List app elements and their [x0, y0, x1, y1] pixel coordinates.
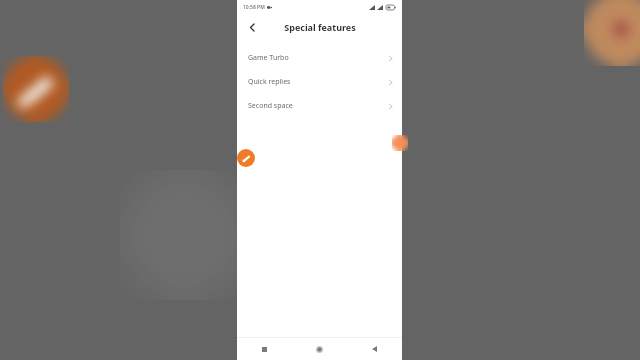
button[interactable]: Recents [237, 338, 292, 360]
button[interactable]: Second space [237, 94, 402, 118]
button[interactable]: Edit [237, 149, 255, 167]
staticText: Second space [248, 101, 293, 111]
staticText: 10:58 PM [243, 4, 265, 11]
button[interactable]: Back [347, 338, 402, 360]
staticText: Quick replies [248, 77, 291, 87]
button[interactable]: Home [292, 338, 347, 360]
button[interactable]: Quick replies [237, 70, 402, 94]
staticText: Special features [284, 21, 356, 33]
button[interactable]: Back [243, 18, 261, 36]
button[interactable]: Game Turbo [237, 46, 402, 70]
staticText: Game Turbo [248, 53, 289, 63]
